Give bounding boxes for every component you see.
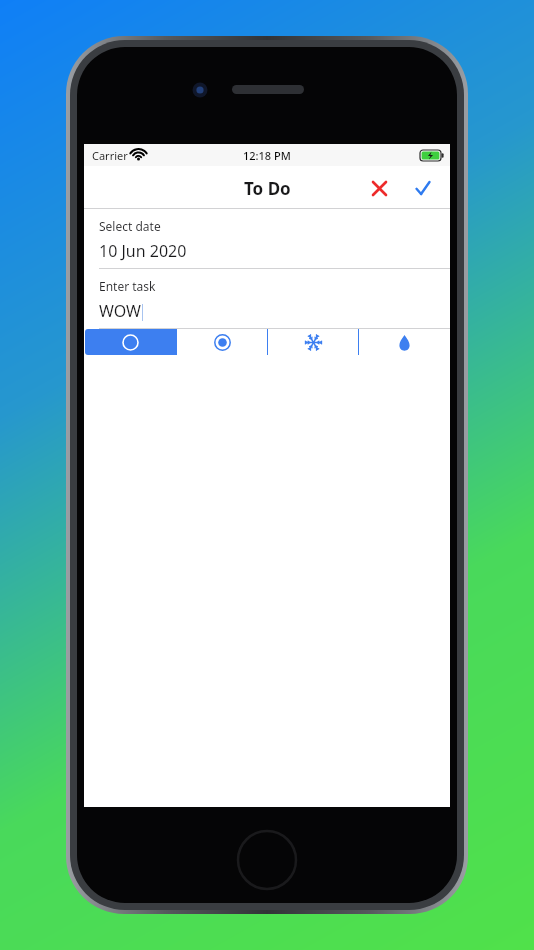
button[interactable]: Select date <box>84 209 450 269</box>
staticText: WOW <box>99 300 141 322</box>
staticText: Carrier <box>92 148 128 163</box>
button[interactable]: Open circle <box>85 329 176 355</box>
button[interactable]: Enter task <box>84 269 450 329</box>
staticText: 10 Jun 2020 <box>99 240 187 262</box>
staticText: To Do <box>244 177 291 200</box>
button[interactable]: Cancel <box>361 170 397 206</box>
staticText: Select date <box>99 218 161 234</box>
staticText: 12:18 PM <box>243 148 291 163</box>
button[interactable]: Snowflake <box>268 329 358 355</box>
button[interactable]: Flame <box>359 329 449 355</box>
staticText: Enter task <box>99 278 156 294</box>
button[interactable]: Filled circle <box>177 329 267 355</box>
button[interactable]: Save <box>405 170 441 206</box>
